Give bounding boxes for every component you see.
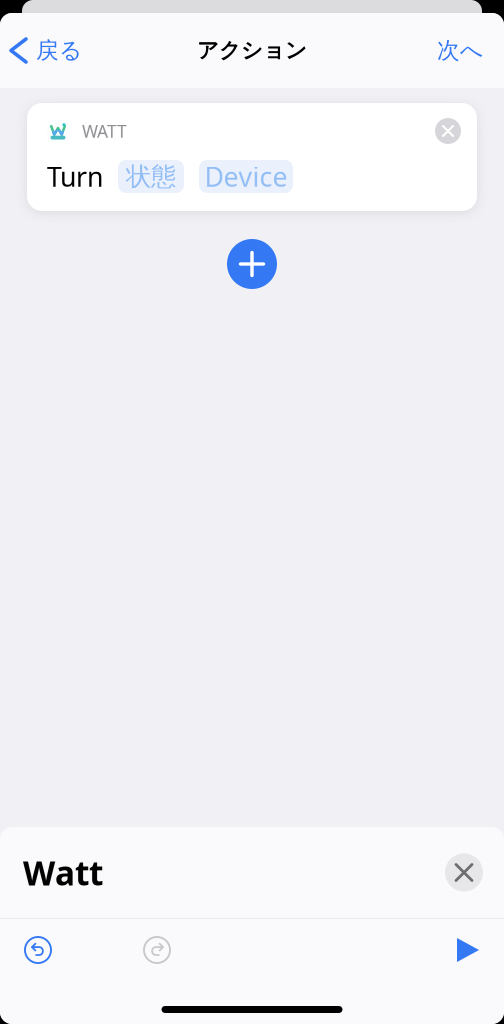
staticText: WATT [82,119,127,142]
button[interactable]: 戻る [0,25,92,76]
button[interactable]: Remove action [435,118,461,144]
button[interactable]: Redo [133,926,181,974]
staticText: Turn [47,159,103,194]
staticText: アクション [197,37,307,64]
button[interactable]: Run [447,928,489,972]
button[interactable]: 次へ [425,25,504,76]
staticText: 状態 [126,161,176,192]
button[interactable]: Clear [445,853,483,891]
staticText: Watt [23,850,103,895]
staticText: 次へ [437,37,483,64]
staticText: 戻る [36,37,82,64]
staticText: Device [204,159,287,194]
button[interactable]: Undo [14,926,62,974]
button[interactable]: Add action [227,239,277,289]
